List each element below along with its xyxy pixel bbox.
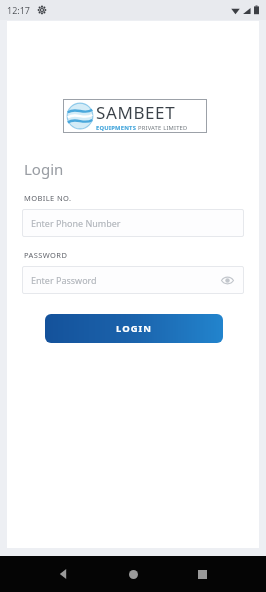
staticText: PASSWORD: [24, 250, 68, 260]
button[interactable]: Enter Password: [22, 266, 244, 294]
button[interactable]: Recent apps: [190, 562, 214, 586]
button[interactable]: Back: [52, 562, 76, 586]
staticText: 12:17: [7, 4, 31, 16]
staticText: LOGIN: [116, 322, 152, 335]
button[interactable]: Enter Phone Number: [22, 209, 244, 237]
staticText: SAMBEET: [96, 101, 176, 124]
staticText: Enter Phone Number: [31, 217, 235, 229]
button[interactable]: LOGIN: [45, 314, 223, 343]
staticText: EQUIPMENTS: [96, 124, 138, 132]
button[interactable]: Show password: [219, 272, 235, 288]
staticText: Login: [24, 159, 64, 179]
staticText: PRIVATE LIMITED: [138, 124, 188, 132]
button[interactable]: Home: [121, 562, 145, 586]
staticText: Enter Password: [31, 274, 219, 286]
staticText: MOBILE NO.: [24, 193, 72, 203]
